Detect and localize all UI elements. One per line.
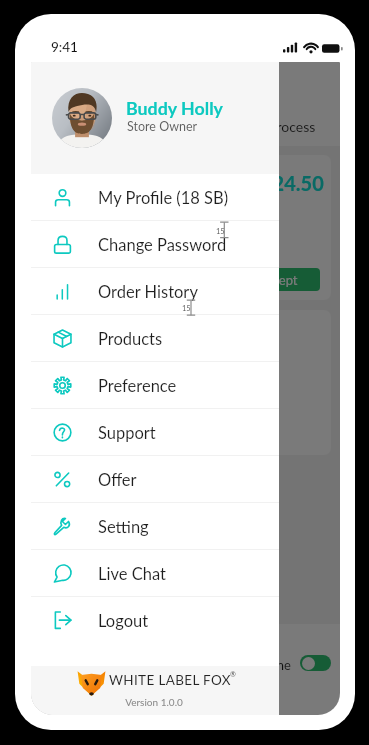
- staticText: Online: [253, 657, 291, 673]
- staticText: Accept: [258, 272, 298, 288]
- staticText: My Profile (18 SB): [98, 188, 229, 208]
- staticText: 9:41: [51, 39, 78, 55]
- staticText: $24.50: [261, 171, 324, 195]
- button[interactable]: Setting: [31, 503, 279, 550]
- staticText: 15: [216, 227, 225, 236]
- button[interactable]: My Profile (18 SB): [31, 174, 279, 221]
- staticText: In Process: [253, 118, 316, 135]
- staticText: Support: [98, 423, 156, 443]
- staticText: WHITE LABEL FOX: [109, 672, 231, 688]
- staticText: ®: [230, 670, 236, 678]
- staticText: Version 1.0.0: [125, 696, 183, 708]
- staticText: Offer: [98, 470, 137, 490]
- staticText: Live Chat: [98, 564, 166, 584]
- button[interactable]: Logout: [31, 597, 279, 644]
- staticText: Store Owner: [127, 119, 198, 134]
- staticText: Products: [98, 329, 163, 349]
- button[interactable]: Support: [31, 409, 279, 456]
- staticText: Setting: [98, 517, 149, 537]
- staticText: 15: [182, 304, 191, 313]
- staticText: Logout: [98, 611, 149, 631]
- staticText: Buddy Holly: [126, 97, 223, 118]
- button[interactable]: Preference: [31, 362, 279, 409]
- button[interactable]: Order History: [31, 268, 279, 315]
- button[interactable]: Change Password: [31, 221, 279, 268]
- staticText: Order History: [98, 282, 198, 302]
- staticText: Change Password: [98, 235, 227, 255]
- button[interactable]: Offer: [31, 456, 279, 503]
- staticText: Preference: [98, 376, 177, 396]
- button[interactable]: Products: [31, 315, 279, 362]
- button[interactable]: Live Chat: [31, 550, 279, 597]
